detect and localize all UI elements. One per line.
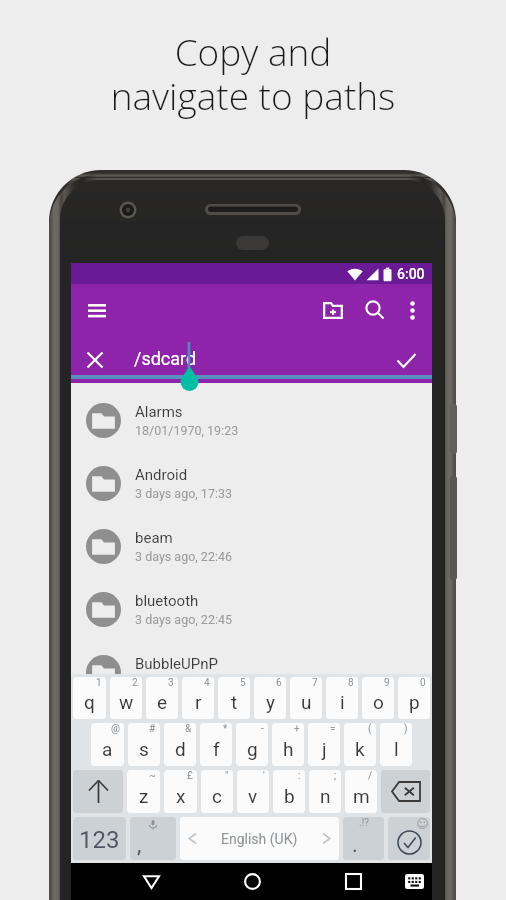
button[interactable]: comma (130, 817, 176, 860)
button[interactable]: Open navigation menu (75, 288, 119, 332)
staticText: BubbleUPnP (135, 655, 218, 673)
staticText: 3 days ago, 22:45 (135, 612, 232, 627)
staticText: k (355, 738, 365, 760)
button[interactable]: del (381, 770, 430, 813)
staticText: n (320, 785, 331, 807)
staticText: 7 (312, 677, 318, 689)
staticText: 3 days ago, 22:46 (135, 549, 232, 564)
staticText: 3 days ago, 17:33 (135, 486, 232, 501)
button[interactable]: period (343, 817, 384, 860)
staticText: £ (187, 770, 193, 782)
button[interactable]: ) (380, 723, 412, 766)
button[interactable]: bluetooth (71, 578, 432, 641)
staticText: v (248, 785, 258, 807)
staticText: Copy and navigate to paths (0, 26, 506, 120)
button[interactable]: Recent apps (330, 863, 376, 900)
staticText: ~ (149, 770, 156, 782)
staticText: bluetooth (135, 592, 199, 610)
button[interactable]: Home (229, 863, 275, 900)
button[interactable]: ' (237, 770, 269, 813)
staticText: 6 (276, 677, 282, 689)
staticText: f (213, 738, 220, 760)
button[interactable]: + (272, 723, 304, 766)
button[interactable]: / (345, 770, 377, 813)
button[interactable]: 4 (182, 677, 214, 719)
button[interactable]: 6 (254, 677, 286, 719)
button[interactable]: beam (71, 515, 432, 578)
staticText: . (352, 832, 358, 858)
button[interactable]: ; (309, 770, 341, 813)
button[interactable]: 2 (110, 677, 142, 719)
staticText: Android (135, 466, 188, 484)
button[interactable]: More options (392, 290, 432, 330)
staticText: ( (368, 723, 372, 735)
button[interactable]: Android (71, 452, 432, 515)
staticText: u (301, 691, 312, 713)
staticText: /sdcard (134, 348, 197, 369)
staticText: m (353, 785, 370, 807)
button[interactable]: shift (73, 770, 123, 813)
staticText: + (294, 723, 300, 735)
button[interactable]: 5 (218, 677, 250, 719)
staticText: d (175, 738, 186, 760)
staticText: 4 (204, 677, 210, 689)
staticText: t (231, 691, 238, 713)
staticText: a (102, 738, 113, 760)
staticText: q (84, 691, 95, 713)
staticText: 6:00 (397, 266, 425, 282)
button[interactable]: * (200, 723, 232, 766)
staticText: ; (334, 770, 337, 782)
staticText: 8 (348, 677, 354, 689)
staticText: p (409, 691, 420, 713)
staticText: 3 days ago, 20:11 (135, 675, 232, 690)
staticText: h (283, 738, 294, 760)
staticText: b (284, 785, 295, 807)
button[interactable]: ~ (127, 770, 160, 813)
staticText: w (119, 691, 134, 713)
staticText: g (247, 738, 258, 760)
staticText: y (266, 691, 275, 713)
staticText: @ (111, 723, 120, 735)
button[interactable]: Search (354, 289, 396, 331)
button[interactable]: enter (388, 817, 430, 860)
button[interactable]: BubbleUPnP (71, 641, 432, 704)
button[interactable]: Create new folder (312, 289, 354, 331)
button[interactable]: ( (344, 723, 376, 766)
staticText: j (322, 738, 327, 760)
button[interactable]: 0 (398, 677, 430, 719)
button[interactable]: @ (91, 723, 124, 766)
button[interactable]: space (180, 817, 339, 860)
button[interactable]: 7 (290, 677, 322, 719)
button[interactable]: 9 (362, 677, 394, 719)
button[interactable]: 1 (73, 677, 106, 719)
staticText: o (373, 691, 384, 713)
button[interactable]: Alarms (71, 389, 432, 452)
button[interactable]: Hide keyboard (391, 863, 437, 900)
button[interactable]: # (128, 723, 160, 766)
staticText: e (157, 691, 168, 713)
button[interactable]: = (308, 723, 340, 766)
staticText: c (212, 785, 222, 807)
staticText: # (149, 723, 156, 735)
staticText: - (261, 723, 264, 735)
button[interactable]: 123 (73, 817, 126, 860)
button[interactable]: : (273, 770, 305, 813)
staticText: i (340, 691, 345, 713)
button[interactable]: - (236, 723, 268, 766)
button[interactable]: " (201, 770, 233, 813)
button[interactable]: 3 (146, 677, 178, 719)
staticText: / (368, 770, 373, 782)
staticText: s (139, 738, 149, 760)
staticText: 123 (79, 826, 120, 854)
button[interactable]: Confirm path (386, 340, 426, 380)
button[interactable]: & (164, 723, 196, 766)
staticText: beam (135, 529, 173, 547)
button[interactable]: £ (164, 770, 197, 813)
staticText: 2 (132, 677, 138, 689)
staticText: = (330, 723, 336, 735)
button[interactable]: Back (128, 863, 174, 900)
button[interactable]: 8 (326, 677, 358, 719)
staticText: ) (404, 723, 408, 735)
button[interactable]: Clear path (75, 340, 115, 380)
staticText: English (UK) (221, 831, 298, 847)
